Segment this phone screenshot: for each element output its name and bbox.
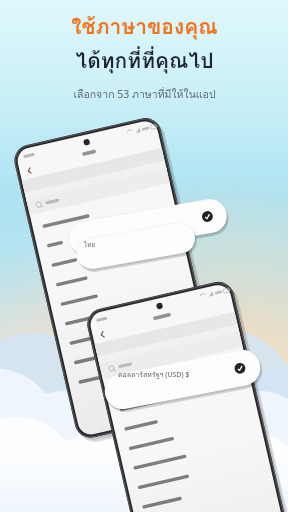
button[interactable]: ไทย — [84, 240, 96, 250]
button[interactable]: ดอลลาร์สหรัฐฯ (USD) $ — [118, 369, 190, 380]
staticText: ใช้ภาษาของคุณ — [71, 10, 218, 43]
staticText: ดอลลาร์สหรัฐฯ (USD) $ — [118, 369, 190, 380]
staticText: เลือกจาก 53 ภาษาที่มีให้ในแอป — [73, 86, 216, 103]
staticText: ไทย — [84, 240, 96, 250]
staticText: ได้ทุกที่ที่คุณไป — [75, 44, 214, 77]
